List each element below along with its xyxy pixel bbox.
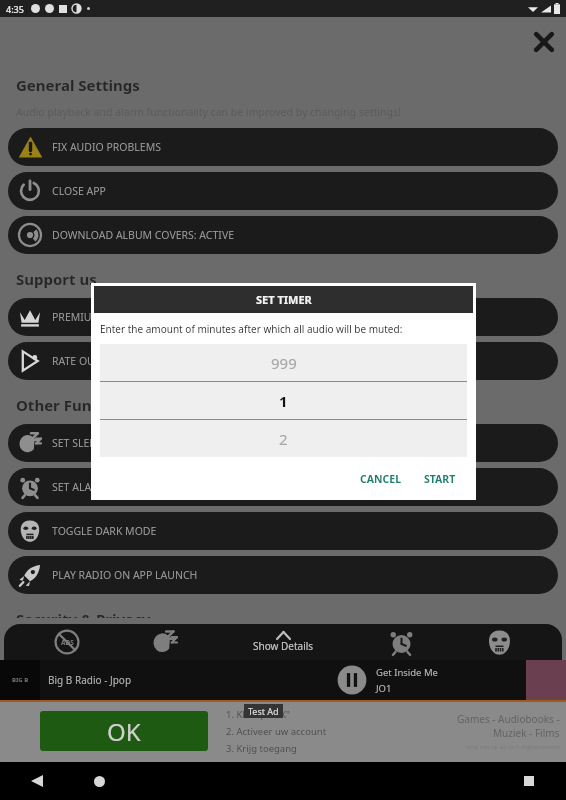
staticText: Support us (16, 269, 97, 289)
staticText: OK (107, 715, 141, 748)
staticText: PLAY RADIO ON APP LAUNCH (52, 568, 198, 582)
button[interactable]: BIG B (0, 660, 566, 700)
button[interactable]: RATE OUR APP (8, 342, 558, 380)
button[interactable]: Dark mode (464, 624, 534, 660)
staticText: ADS (61, 638, 74, 647)
button[interactable]: Block ads (32, 624, 102, 660)
staticText: DOWNLOAD ALBUM COVERS: ACTIVE (52, 228, 235, 242)
staticText: Show Details (253, 639, 314, 653)
button[interactable]: SET SLEEP TIMER (8, 424, 558, 462)
staticText: 999 (271, 353, 297, 373)
staticText: Test Ad (248, 705, 279, 717)
staticText: Big B Radio - Jpop (48, 673, 132, 687)
button[interactable]: 999 (100, 344, 467, 381)
staticText: BIG B (12, 676, 29, 684)
staticText: SET SLEEP TIMER (52, 436, 136, 450)
button[interactable]: Show Details (228, 624, 338, 660)
staticText: START (424, 472, 456, 486)
button[interactable]: PREMIUM (8, 298, 558, 336)
staticText: CLOSE APP (52, 184, 106, 198)
button[interactable]: Back (22, 766, 52, 796)
button[interactable]: Close (522, 20, 566, 64)
staticText: CANCEL (360, 472, 402, 486)
staticText: RATE OUR APP (52, 354, 124, 368)
staticText: Muziek - Films (493, 726, 560, 740)
staticText: Audio playback and alarm functionality c… (16, 105, 401, 119)
button[interactable]: Recents (514, 766, 544, 796)
button[interactable]: CANCEL (352, 468, 410, 490)
staticText: JO1 (376, 682, 392, 695)
button[interactable]: Pause (336, 664, 368, 696)
staticText: Games - Audiobooks - (457, 712, 560, 726)
button[interactable]: Alarm (366, 624, 436, 660)
staticText: 1 (279, 391, 288, 411)
staticText: Vind het op all-in-1-digitalcontent (466, 743, 560, 751)
staticText: Enter the amount of minutes after which … (100, 322, 403, 336)
button[interactable]: START (416, 468, 464, 490)
button[interactable]: OK (40, 711, 208, 751)
staticText: 2 (279, 429, 288, 449)
staticText: SET ALARM (52, 480, 108, 494)
button[interactable]: PLAY RADIO ON APP LAUNCH (8, 556, 558, 594)
staticText: 4:35 (6, 3, 24, 15)
button[interactable]: TOGGLE DARK MODE (8, 512, 558, 550)
staticText: Security & Privacy (16, 609, 151, 618)
button[interactable]: DOWNLOAD ALBUM COVERS: ACTIVE (8, 216, 558, 254)
staticText: 3. Krijg toegang (226, 742, 297, 755)
staticText: TOGGLE DARK MODE (52, 524, 157, 538)
button[interactable]: FIX AUDIO PROBLEMS (8, 128, 558, 166)
button[interactable]: Sleep timer (130, 624, 200, 660)
staticText: General Settings (16, 75, 140, 95)
button[interactable]: SET ALARM (8, 468, 558, 506)
staticText: 2. Activeer uw account (226, 725, 327, 738)
staticText: FIX AUDIO PROBLEMS (52, 140, 161, 154)
button[interactable]: 1 (100, 382, 467, 419)
staticText: Get Inside Me (376, 666, 438, 679)
staticText: 1. Klik op "OK" (226, 708, 290, 721)
staticText: SET TIMER (256, 292, 312, 307)
button[interactable]: CLOSE APP (8, 172, 558, 210)
staticText: PREMIUM (52, 310, 102, 324)
button[interactable]: Home (84, 766, 114, 796)
staticText: Other Functions (16, 395, 137, 415)
